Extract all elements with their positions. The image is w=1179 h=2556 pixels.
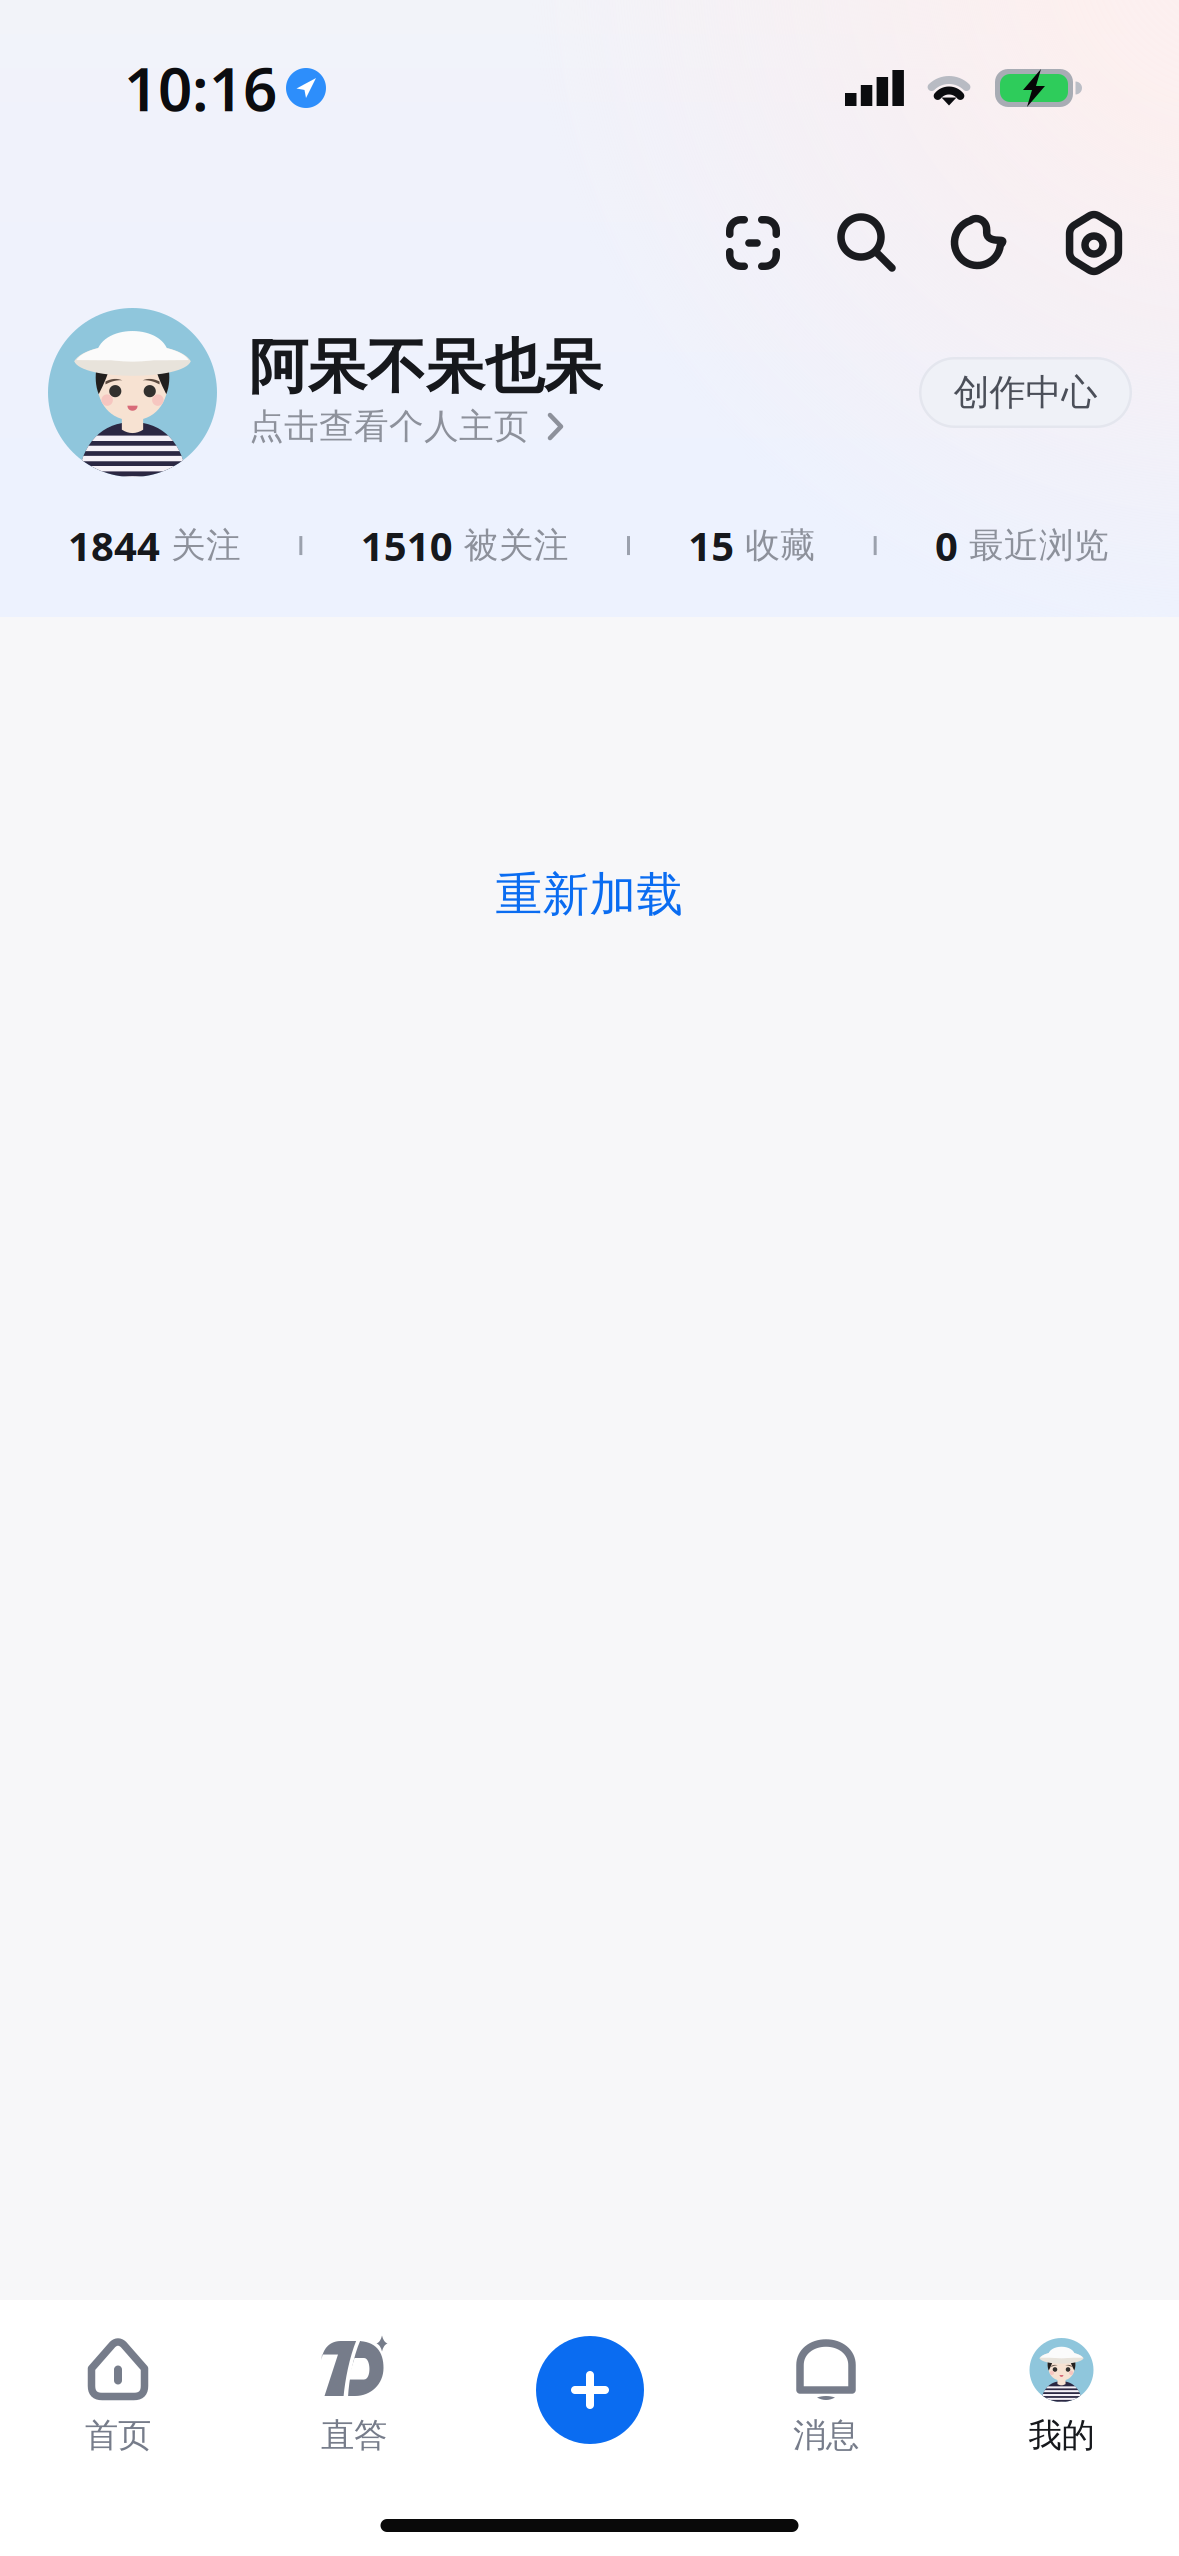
button[interactable]: 发布	[472, 2336, 708, 2500]
button[interactable]: 0	[935, 513, 1109, 578]
staticText: 收藏	[745, 524, 815, 567]
staticText: 1844	[68, 519, 160, 572]
staticText: 10:16	[124, 48, 277, 128]
staticText: 0	[935, 519, 958, 572]
staticText: 点击查看个人主页	[249, 405, 529, 448]
staticText: 我的	[1028, 2415, 1094, 2456]
staticText: 重新加载	[495, 866, 683, 923]
button[interactable]: 我的	[944, 2336, 1179, 2500]
button[interactable]: 15	[688, 513, 815, 578]
staticText: 15	[688, 519, 734, 572]
staticText: 首页	[85, 2415, 151, 2456]
staticText: 关注	[171, 524, 241, 567]
button[interactable]: 1844	[68, 513, 241, 578]
button[interactable]: 1510	[361, 513, 569, 578]
button[interactable]: 设置	[1038, 186, 1152, 300]
staticText: 创作中心	[953, 370, 1097, 415]
button[interactable]: 扫一扫	[696, 186, 810, 300]
staticText: 1510	[361, 519, 453, 572]
button[interactable]: 重新加载	[465, 852, 713, 937]
button[interactable]: 夜间模式	[924, 186, 1038, 300]
staticText: 阿呆不呆也呆	[249, 331, 603, 403]
staticText: 最近浏览	[969, 524, 1109, 567]
button[interactable]: 首页	[0, 2336, 236, 2500]
button[interactable]: 直答	[236, 2336, 472, 2500]
staticText: 消息	[793, 2415, 859, 2456]
staticText: 直答	[321, 2415, 387, 2456]
button[interactable]: 消息	[708, 2336, 944, 2500]
button[interactable]: 搜索	[810, 186, 924, 300]
staticText: 被关注	[464, 524, 569, 567]
button[interactable]: 阿呆不呆也呆	[48, 308, 603, 477]
button[interactable]: 创作中心	[919, 357, 1132, 428]
